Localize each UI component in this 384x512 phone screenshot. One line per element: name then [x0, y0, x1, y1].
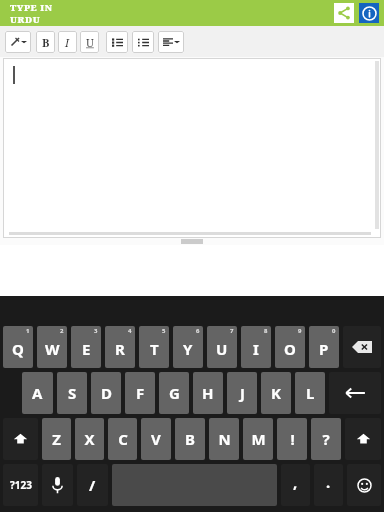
staticText: I: [65, 35, 70, 50]
staticText: M: [251, 429, 266, 449]
button[interactable]: [3, 58, 381, 238]
staticText: V: [151, 429, 161, 449]
button[interactable]: C: [108, 418, 137, 460]
staticText: O: [284, 339, 296, 359]
button[interactable]: 1: [3, 326, 33, 368]
button[interactable]: Shift: [345, 418, 381, 460]
staticText: D: [101, 383, 112, 403]
button[interactable]: F: [125, 372, 155, 414]
button[interactable]: V: [141, 418, 171, 460]
staticText: K: [271, 383, 281, 403]
button[interactable]: [106, 31, 128, 53]
button[interactable]: Info: [359, 3, 379, 23]
staticText: I: [253, 339, 259, 359]
staticText: G: [169, 383, 180, 403]
button[interactable]: 4: [105, 326, 135, 368]
button[interactable]: B: [175, 418, 205, 460]
staticText: 2: [60, 327, 64, 335]
staticText: P: [319, 339, 329, 359]
button[interactable]: Emoji: [347, 464, 381, 506]
staticText: U: [86, 35, 94, 50]
staticText: J: [240, 383, 245, 403]
staticText: URDU: [10, 13, 41, 25]
staticText: ?123: [10, 478, 32, 492]
staticText: H: [202, 383, 214, 403]
button[interactable]: 2: [37, 326, 67, 368]
staticText: Y: [183, 339, 193, 359]
button[interactable]: S: [57, 372, 87, 414]
staticText: U: [216, 339, 228, 359]
staticText: !: [290, 429, 295, 449]
button[interactable]: I: [58, 31, 77, 53]
button[interactable]: K: [261, 372, 291, 414]
button[interactable]: ,: [281, 464, 310, 506]
button[interactable]: G: [159, 372, 189, 414]
button[interactable]: M: [243, 418, 273, 460]
button[interactable]: Voice input: [42, 464, 73, 506]
staticText: C: [118, 429, 128, 449]
button[interactable]: 5: [139, 326, 169, 368]
button[interactable]: 8: [241, 326, 271, 368]
staticText: N: [218, 429, 231, 449]
staticText: .: [326, 472, 331, 492]
staticText: ,: [293, 472, 298, 492]
staticText: 3: [94, 327, 98, 335]
staticText: Q: [12, 339, 24, 359]
staticText: T: [150, 339, 159, 359]
button[interactable]: A: [22, 372, 53, 414]
button[interactable]: Enter: [329, 372, 381, 414]
staticText: F: [136, 383, 145, 403]
staticText: TYPE IN: [10, 1, 53, 13]
button[interactable]: /: [77, 464, 108, 506]
button[interactable]: 6: [173, 326, 203, 368]
staticText: 5: [162, 327, 166, 335]
button[interactable]: B: [36, 31, 55, 53]
staticText: X: [84, 429, 95, 449]
button[interactable]: H: [193, 372, 223, 414]
staticText: W: [45, 339, 60, 359]
staticText: Z: [52, 429, 61, 449]
staticText: A: [32, 383, 43, 403]
button[interactable]: 7: [207, 326, 237, 368]
button[interactable]: 0: [309, 326, 339, 368]
button[interactable]: 9: [275, 326, 305, 368]
button[interactable]: [5, 31, 31, 53]
button[interactable]: .: [314, 464, 343, 506]
staticText: E: [82, 339, 91, 359]
button[interactable]: Z: [42, 418, 71, 460]
button[interactable]: ?123: [3, 464, 38, 506]
staticText: 9: [298, 327, 302, 335]
staticText: 1: [26, 327, 30, 335]
staticText: 6: [196, 327, 200, 335]
button[interactable]: J: [227, 372, 257, 414]
button[interactable]: X: [75, 418, 104, 460]
button[interactable]: Backspace: [343, 326, 381, 368]
button[interactable]: !: [277, 418, 307, 460]
staticText: L: [306, 383, 315, 403]
staticText: 4: [128, 327, 132, 335]
staticText: R: [115, 339, 125, 359]
button[interactable]: Shift: [3, 418, 38, 460]
staticText: 0: [332, 327, 336, 335]
staticText: B: [185, 429, 195, 449]
button[interactable]: [158, 31, 184, 53]
staticText: /: [89, 475, 96, 495]
staticText: 8: [264, 327, 268, 335]
button[interactable]: D: [91, 372, 121, 414]
staticText: S: [68, 383, 77, 403]
staticText: B: [42, 35, 50, 50]
button[interactable]: [132, 31, 154, 53]
button[interactable]: ?: [311, 418, 341, 460]
button[interactable]: L: [295, 372, 325, 414]
staticText: 7: [230, 327, 234, 335]
staticText: ?: [322, 429, 330, 449]
button[interactable]: N: [209, 418, 239, 460]
button[interactable]: Share: [334, 3, 354, 23]
button[interactable]: 3: [71, 326, 101, 368]
button[interactable]: U: [80, 31, 99, 53]
